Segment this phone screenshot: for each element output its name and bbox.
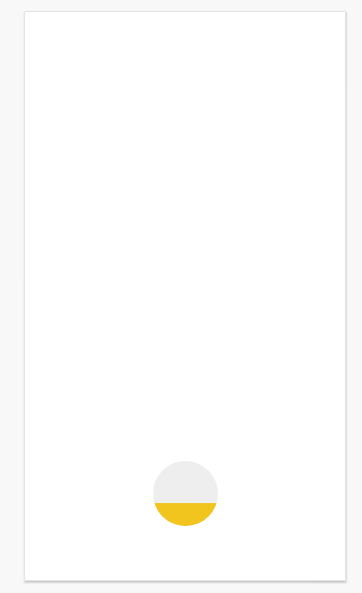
button[interactable]: Loading progress [153,461,218,526]
